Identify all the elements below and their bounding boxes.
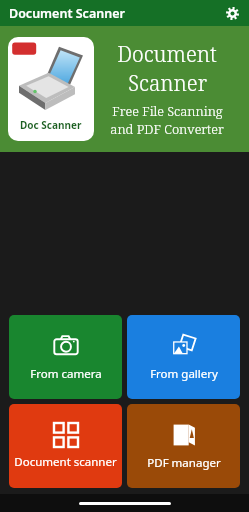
staticText: Scanner xyxy=(128,69,207,98)
button[interactable]: Doc Scanner xyxy=(0,26,249,152)
staticText: PDF manager xyxy=(147,455,221,471)
staticText: Document xyxy=(117,40,217,69)
staticText: Doc Scanner xyxy=(20,118,82,132)
button[interactable]: From gallery xyxy=(127,315,240,399)
staticText: From gallery xyxy=(150,366,218,382)
button[interactable]: Settings xyxy=(221,2,243,24)
staticText: Document Scanner xyxy=(9,5,125,22)
staticText: Free File Scanning xyxy=(112,102,223,120)
button[interactable]: Document scanner xyxy=(9,404,122,488)
staticText: and PDF Converter xyxy=(110,120,224,138)
staticText: Document scanner xyxy=(14,454,117,470)
button[interactable]: PDF manager xyxy=(127,404,240,488)
staticText: From camera xyxy=(30,366,102,382)
button[interactable]: From camera xyxy=(9,315,122,399)
